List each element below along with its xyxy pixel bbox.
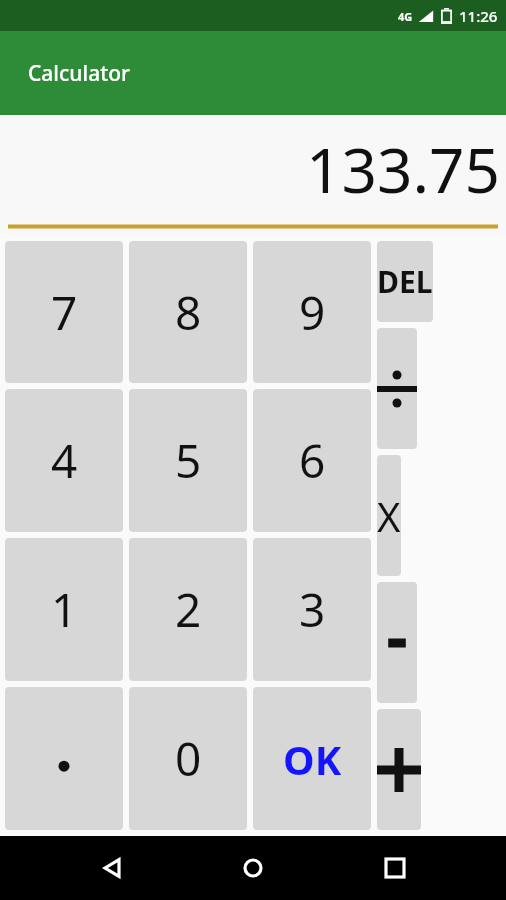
staticText: 4G [398,9,413,24]
button[interactable]: key [377,582,417,703]
staticText: Calculator [28,59,130,88]
button[interactable]: Recent apps [365,838,425,898]
staticText: 0 [175,727,202,790]
button[interactable]: DEL [377,241,433,322]
staticText: 8 [175,281,202,344]
button[interactable]: 6 [253,389,371,532]
button[interactable]: 7 [5,241,123,383]
button[interactable]: 9 [253,241,371,383]
button[interactable]: X [377,455,401,576]
staticText: OK [283,732,342,786]
button[interactable]: 0 [129,687,247,830]
button[interactable]: key [5,687,123,830]
staticText: DEL [377,261,433,302]
staticText: X [377,489,401,543]
button[interactable]: 4 [5,389,123,532]
button[interactable]: key [377,709,421,830]
staticText: 3 [299,578,326,641]
button[interactable]: Back [82,838,142,898]
staticText: 4 [51,429,78,492]
button[interactable]: 5 [129,389,247,532]
button[interactable]: OK [253,687,371,830]
button[interactable]: 1 [5,538,123,681]
staticText: 11:26 [459,6,498,26]
staticText: 9 [299,281,326,344]
staticText: 133.75 [306,127,500,211]
staticText: 1 [51,578,78,641]
button[interactable]: 2 [129,538,247,681]
staticText: 2 [175,578,202,641]
button[interactable]: 3 [253,538,371,681]
staticText: 6 [299,429,326,492]
button[interactable]: Home [223,838,283,898]
button[interactable]: key [377,328,417,449]
staticText: 7 [51,281,78,344]
button[interactable]: 8 [129,241,247,383]
staticText: 5 [175,429,202,492]
